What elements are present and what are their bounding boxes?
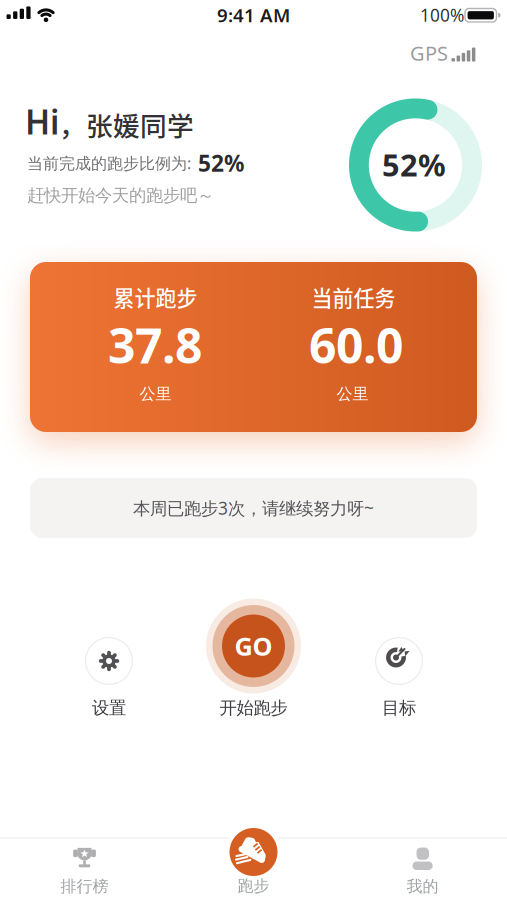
staticText: 累计跑步 [113,282,197,312]
staticText: ，张媛同学 [59,105,194,144]
staticText: 9:41 AM [217,3,290,27]
staticText: 60.0 [309,313,403,377]
staticText: 赶快开始今天的跑步吧～ [27,185,214,206]
staticText: 公里 [139,384,171,404]
button[interactable]: GO [198,596,308,722]
staticText: 当前完成的跑步比例为: [27,152,191,174]
staticText: 37.8 [108,313,202,377]
staticText: 当前任务 [311,282,395,312]
staticText: 100% [420,3,464,26]
staticText: GO [234,629,272,663]
staticText: 跑步 [237,876,269,896]
button[interactable]: 跑步 [211,815,295,895]
staticText: 开始跑步 [219,697,287,719]
staticText: GPS [410,40,448,66]
staticText: 本周已跑步3次，请继续努力呀~ [133,496,374,519]
staticText: 排行榜 [60,877,108,896]
staticText: 设置 [92,697,126,719]
staticText: 52% [198,148,244,178]
staticText: 我的 [406,877,438,896]
staticText: 目标 [382,697,416,719]
button[interactable]: 设置 [73,637,145,721]
staticText: 52% [382,144,446,185]
button[interactable]: 排行榜 [46,845,122,899]
staticText: Hi [25,99,59,144]
staticText: 公里 [336,384,368,404]
button[interactable]: 我的 [384,845,460,899]
button[interactable]: 目标 [363,637,435,721]
